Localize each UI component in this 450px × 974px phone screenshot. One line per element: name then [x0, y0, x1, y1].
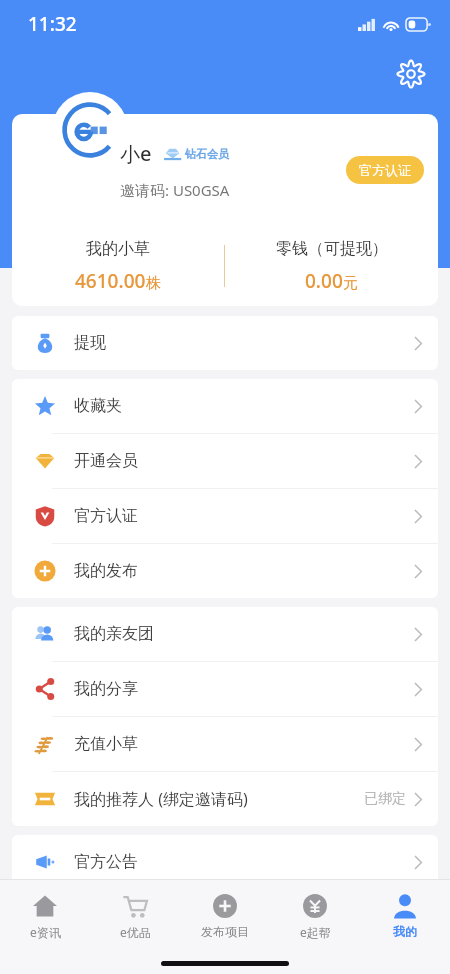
staticText: 已绑定 [364, 790, 406, 808]
button[interactable]: 收藏夹 [12, 379, 438, 434]
staticText: 充值小草 [74, 734, 414, 754]
staticText: 开通会员 [74, 451, 414, 471]
button[interactable]: 开通会员 [12, 434, 438, 489]
staticText: 我的亲友团 [74, 624, 414, 644]
staticText: e优品 [120, 924, 151, 940]
staticText: 我的推荐人 (绑定邀请码) [74, 788, 364, 810]
staticText: 零钱（可提现） [276, 239, 388, 259]
button[interactable]: e优品 [90, 880, 180, 952]
staticText: 官方认证 [74, 506, 414, 526]
button[interactable]: 零钱（可提现） [225, 239, 438, 294]
button[interactable]: 我的小草 [12, 239, 224, 294]
staticText: 提现 [74, 333, 414, 353]
staticText: 我的发布 [74, 561, 414, 581]
staticText: 0.00 [305, 268, 343, 294]
staticText: e资讯 [30, 924, 61, 940]
button[interactable]: 官方公告 [12, 835, 438, 889]
staticText: 发布项目 [201, 924, 249, 939]
button[interactable]: 提现 [12, 316, 438, 370]
staticText: 官方公告 [74, 852, 414, 872]
button[interactable]: e资讯 [0, 880, 90, 952]
staticText: 我的小草 [86, 239, 150, 259]
button[interactable]: 我的发布 [12, 544, 438, 598]
button[interactable]: 官方认证 [346, 156, 424, 184]
button[interactable]: 我的 [360, 880, 450, 952]
staticText: 小e [120, 140, 152, 167]
button[interactable]: 我的推荐人 (绑定邀请码) [12, 772, 438, 826]
staticText: 钻石会员 [185, 147, 229, 161]
staticText: 元 [343, 274, 358, 293]
button[interactable] [52, 92, 128, 168]
button[interactable]: 充值小草 [12, 717, 438, 772]
staticText: 11:32 [28, 11, 77, 37]
button[interactable]: 我的分享 [12, 662, 438, 717]
staticText: 邀请码: US0GSA [120, 180, 230, 200]
staticText: 官方认证 [359, 162, 411, 178]
button[interactable]: 我的亲友团 [12, 607, 438, 662]
button[interactable]: 发布项目 [180, 880, 270, 952]
staticText: 株 [146, 274, 161, 293]
staticText: 我的 [393, 924, 417, 939]
button[interactable]: Settings [394, 57, 428, 91]
staticText: 4610.00 [75, 268, 146, 294]
staticText: 我的分享 [74, 679, 414, 699]
button[interactable]: 官方认证 [12, 489, 438, 544]
button[interactable]: e起帮 [270, 880, 360, 952]
staticText: 收藏夹 [74, 396, 414, 416]
staticText: e起帮 [300, 924, 331, 940]
